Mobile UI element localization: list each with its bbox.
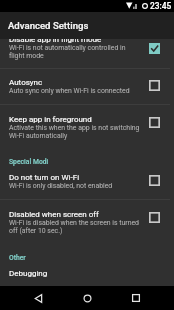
button[interactable]: Home xyxy=(69,286,105,310)
button[interactable]: Recent apps xyxy=(118,286,153,310)
button[interactable]: Do not turn on Wi-Fi xyxy=(0,167,174,199)
staticText: Disable app in flight mode xyxy=(9,39,102,44)
staticText: Keep app in foreground xyxy=(9,115,92,124)
staticText: Autosync xyxy=(9,78,43,87)
staticText: Other xyxy=(9,254,26,262)
button[interactable]: Disable app in flight mode xyxy=(0,39,174,68)
button[interactable]: Disabled when screen off xyxy=(0,200,174,244)
staticText: Debugging xyxy=(9,269,48,278)
staticText: Wi-Fi is only disabled, not enabled xyxy=(9,182,113,190)
staticText: Wi-Fi is not automatically controlled in… xyxy=(9,44,140,60)
staticText: Special Modi xyxy=(9,158,49,166)
staticText: Do not turn on Wi-Fi xyxy=(9,173,80,182)
staticText: Activate this when the app is not switch… xyxy=(9,124,140,140)
staticText: Disabled when screen off xyxy=(9,210,99,219)
button[interactable]: Back xyxy=(21,286,56,310)
button[interactable]: Debugging xyxy=(0,267,174,286)
staticText: 23:45 xyxy=(150,1,172,11)
staticText: Auto sync only when Wi-Fi is connected xyxy=(9,87,130,95)
staticText: Advanced Settings xyxy=(8,20,89,31)
button[interactable]: Autosync xyxy=(0,69,174,104)
staticText: Wi-Fi is disabled when the screen is tur… xyxy=(9,219,140,235)
button[interactable]: Keep app in foreground xyxy=(0,105,174,149)
